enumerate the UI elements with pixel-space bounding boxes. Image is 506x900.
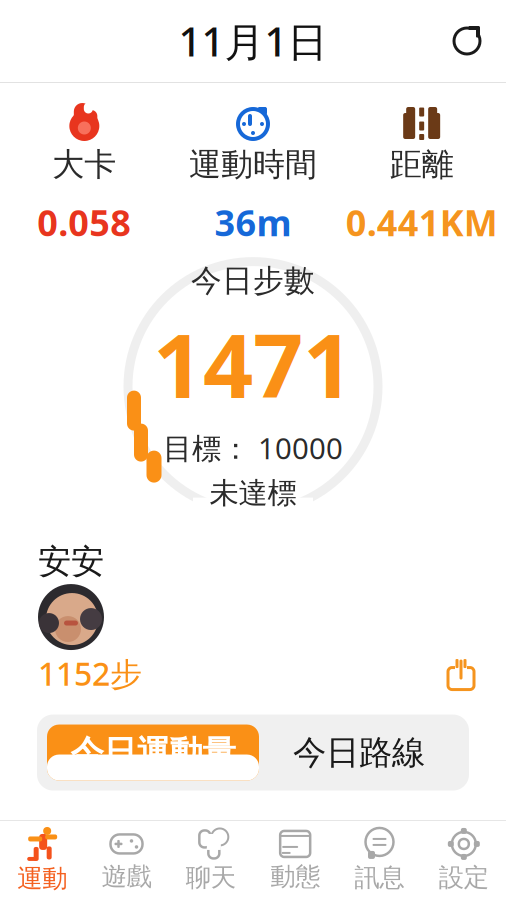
- button[interactable]: Refresh: [450, 24, 506, 58]
- staticText: 1471: [153, 305, 353, 422]
- staticText: 距離: [390, 145, 454, 184]
- staticText: 動態: [270, 861, 320, 892]
- staticText: 今日運動量: [70, 732, 235, 773]
- staticText: 今日路線: [293, 732, 425, 773]
- button[interactable]: Share: [444, 654, 506, 694]
- staticText: 36m: [214, 198, 291, 246]
- staticText: 訊息: [354, 862, 404, 893]
- staticText: 聊天: [186, 862, 236, 893]
- staticText: 運動: [17, 863, 67, 894]
- button[interactable]: 安安: [0, 541, 142, 694]
- staticText: 11月1日: [178, 14, 327, 67]
- staticText: 遊戲: [101, 861, 151, 892]
- staticText: 未達標: [209, 475, 296, 511]
- button[interactable]: 動態: [253, 823, 337, 898]
- staticText: 設定: [439, 862, 489, 893]
- button[interactable]: 今日路線: [259, 724, 459, 780]
- staticText: 目標： 10000: [163, 428, 343, 467]
- staticText: 0.441KM: [346, 198, 498, 246]
- button[interactable]: 聊天: [169, 822, 253, 899]
- button[interactable]: 運動: [0, 821, 84, 900]
- button[interactable]: 今日運動量: [47, 724, 259, 780]
- button[interactable]: 訊息: [337, 822, 422, 899]
- staticText: 大卡: [52, 145, 116, 184]
- button[interactable]: 遊戲: [84, 823, 169, 898]
- button[interactable]: 設定: [422, 822, 506, 899]
- staticText: 今日步數: [191, 262, 315, 300]
- staticText: 運動時間: [189, 145, 317, 184]
- staticText: 0.058: [37, 198, 131, 246]
- staticText: 安安: [38, 541, 104, 582]
- staticText: 1152步: [38, 652, 142, 695]
